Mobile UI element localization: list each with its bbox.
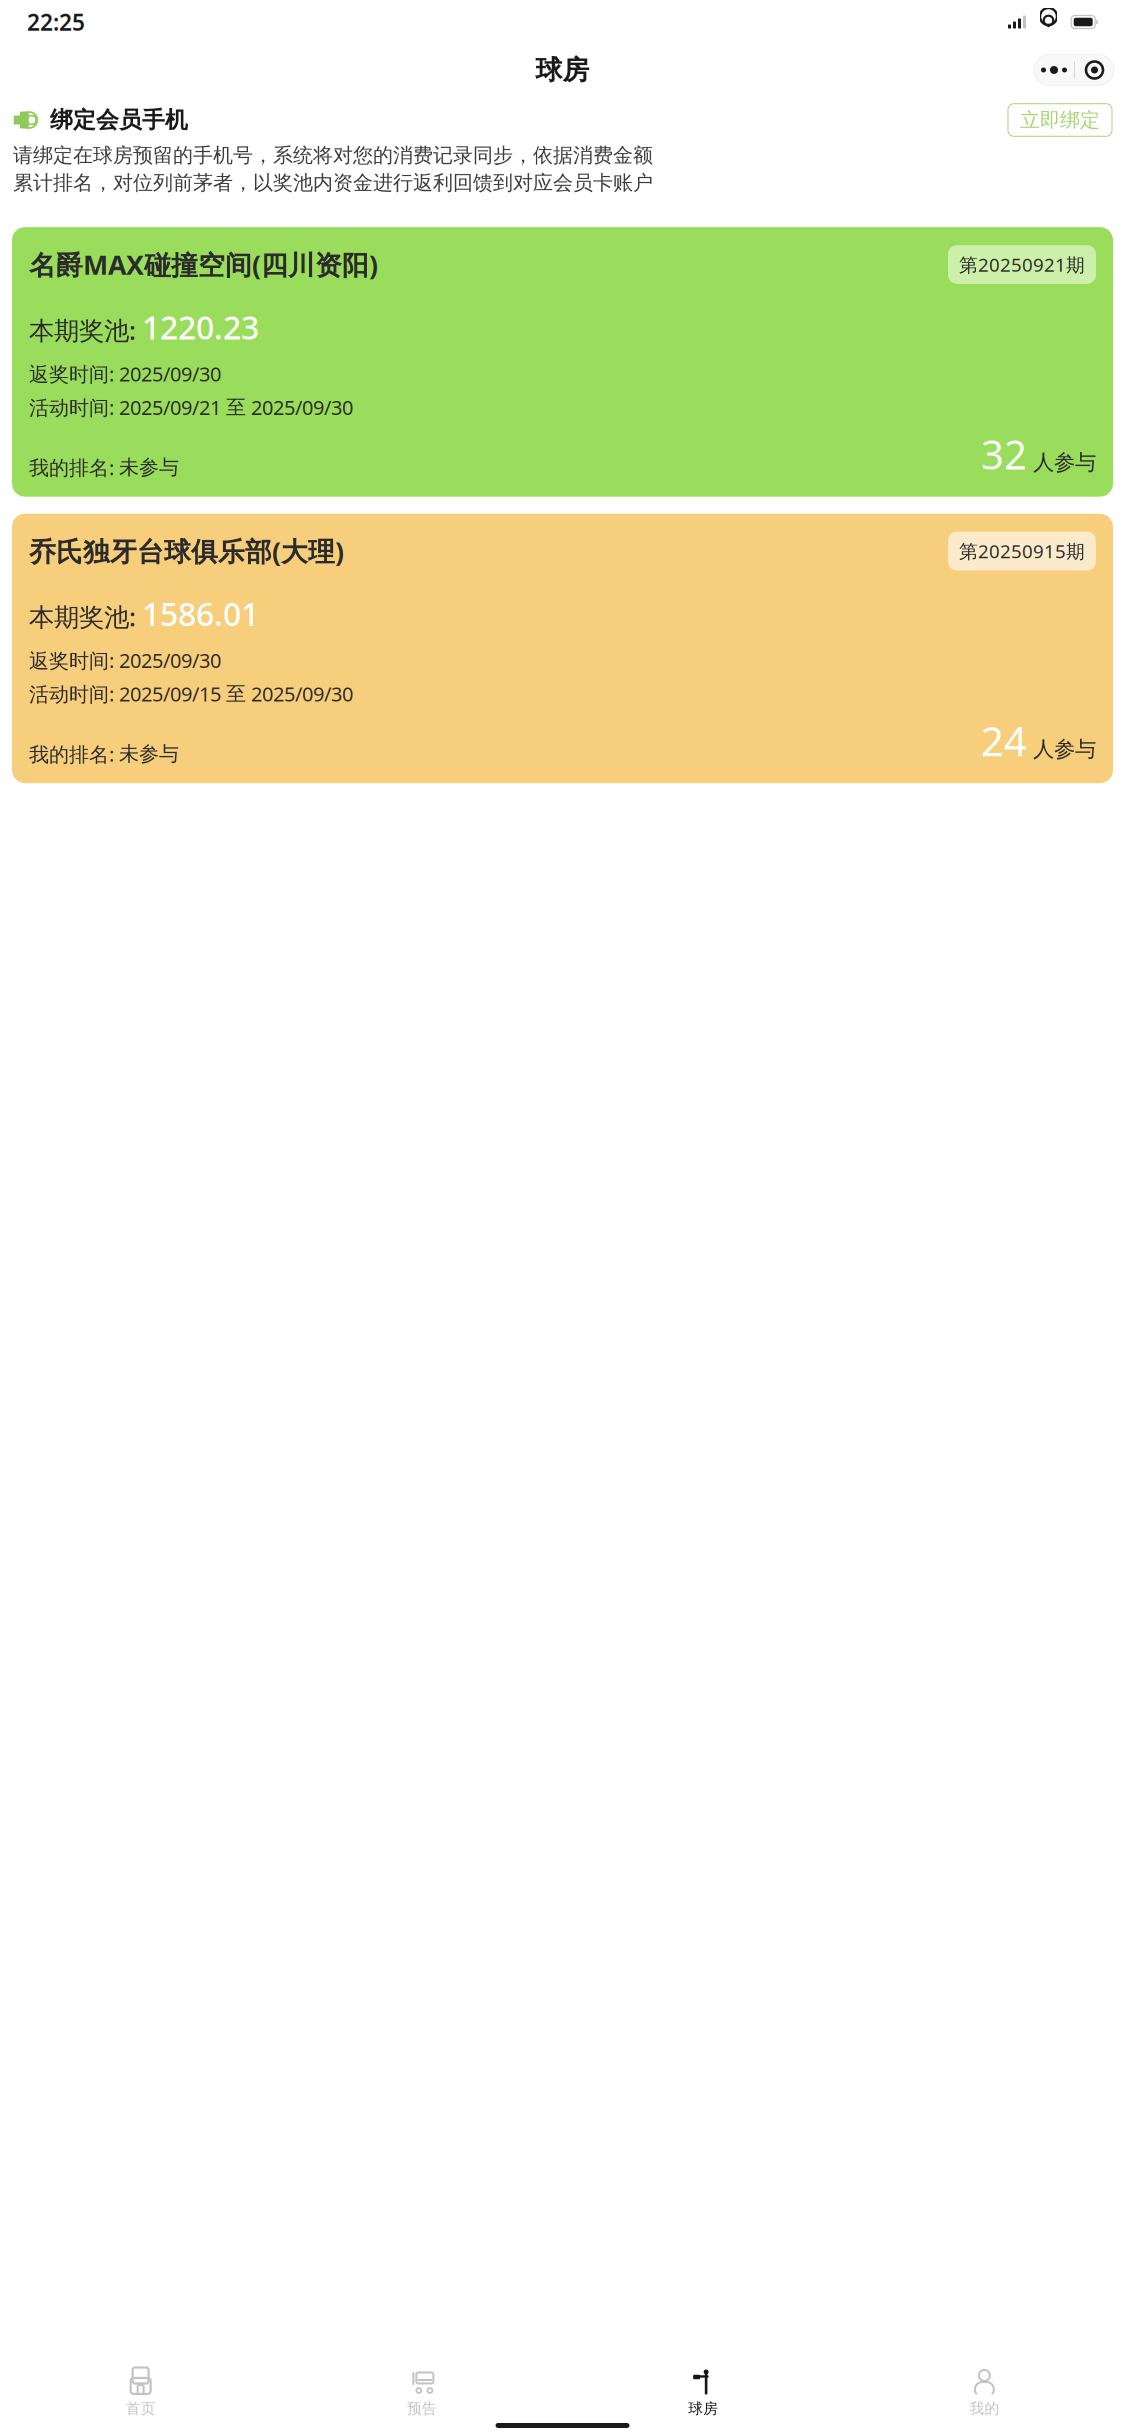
staticText: 2025/09/30 <box>251 680 353 707</box>
button[interactable]: 预告 <box>281 2368 562 2417</box>
staticText: 球房 <box>535 54 589 86</box>
staticText: 1586.01 <box>142 592 259 635</box>
staticText: 第20250921期 <box>959 252 1085 277</box>
staticText: 返奖时间: <box>29 647 114 673</box>
staticText: 我的排名: <box>29 454 114 481</box>
staticText: 2025/09/21 <box>119 394 221 421</box>
staticText: 2025/09/30 <box>119 647 221 673</box>
staticText: 首页 <box>126 2399 156 2417</box>
staticText: 1220.23 <box>142 306 259 348</box>
staticText: 绑定会员手机 <box>50 106 188 134</box>
button[interactable]: More options and close <box>1034 54 1114 85</box>
button[interactable]: 球房 <box>562 2368 844 2417</box>
staticText: 未参与 <box>119 742 179 766</box>
staticText: 人参与 <box>1033 449 1096 476</box>
button[interactable]: 首页 <box>0 2368 281 2417</box>
staticText: 我的排名: <box>29 741 114 767</box>
staticText: 我的 <box>969 2399 999 2417</box>
staticText: 至 <box>226 681 246 706</box>
staticText: 32 <box>981 427 1027 481</box>
staticText: 球房 <box>688 2399 718 2417</box>
staticText: 本期奖池: <box>29 313 136 347</box>
staticText: 人参与 <box>1033 736 1096 762</box>
staticText: 24 <box>981 714 1027 767</box>
staticText: 本期奖池: <box>29 600 136 633</box>
button[interactable]: 名爵MAX碰撞空间(四川资阳) <box>12 227 1113 497</box>
staticText: 名爵MAX碰撞空间(四川资阳) <box>29 247 378 282</box>
staticText: 活动时间: <box>29 680 114 707</box>
staticText: 2025/09/30 <box>251 394 353 421</box>
staticText: 22:25 <box>27 7 85 37</box>
staticText: 预告 <box>407 2399 437 2417</box>
button[interactable]: 我的 <box>844 2368 1125 2417</box>
staticText: 2025/09/15 <box>119 680 221 707</box>
staticText: 未参与 <box>119 455 179 480</box>
staticText: 2025/09/30 <box>119 360 221 387</box>
staticText: 累计排名，对位列前茅者，以奖池内资金进行返利回馈到对应会员卡账户 <box>13 171 653 195</box>
staticText: 活动时间: <box>29 394 114 421</box>
staticText: 立即绑定 <box>1020 108 1100 132</box>
staticText: 第20250915期 <box>959 539 1085 563</box>
staticText: 返奖时间: <box>29 360 114 387</box>
staticText: 请绑定在球房预留的手机号，系统将对您的消费记录同步，依据消费金额 <box>13 143 653 168</box>
staticText: 乔氏独牙台球俱乐部(大理) <box>29 533 344 569</box>
button[interactable]: 立即绑定 <box>1008 104 1112 136</box>
button[interactable]: 乔氏独牙台球俱乐部(大理) <box>12 514 1113 783</box>
staticText: 至 <box>226 395 246 420</box>
